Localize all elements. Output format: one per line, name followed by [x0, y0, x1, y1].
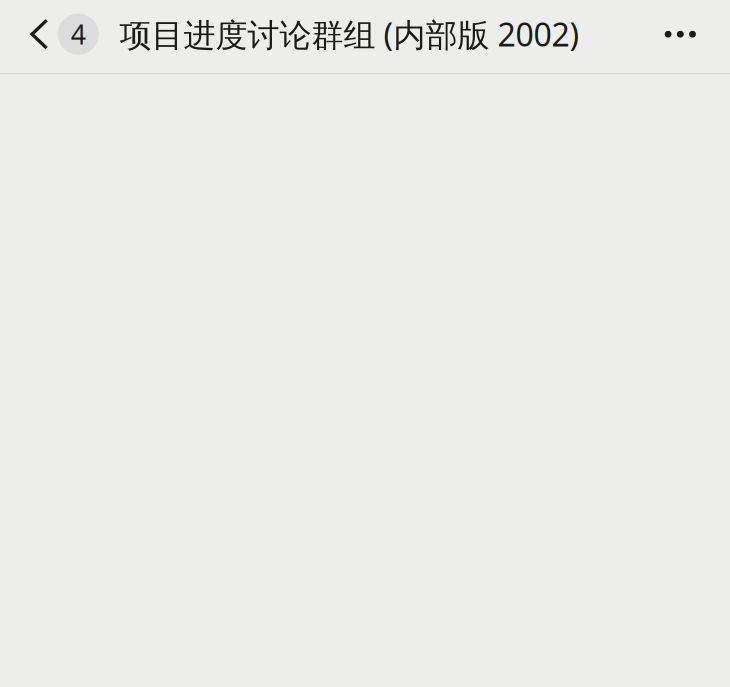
- button[interactable]: More options: [665, 0, 730, 68]
- staticText: 4: [71, 16, 86, 52]
- button[interactable]: Back: [0, 0, 120, 68]
- staticText: 项目进度讨论群组 (内部版 2002): [120, 13, 580, 55]
